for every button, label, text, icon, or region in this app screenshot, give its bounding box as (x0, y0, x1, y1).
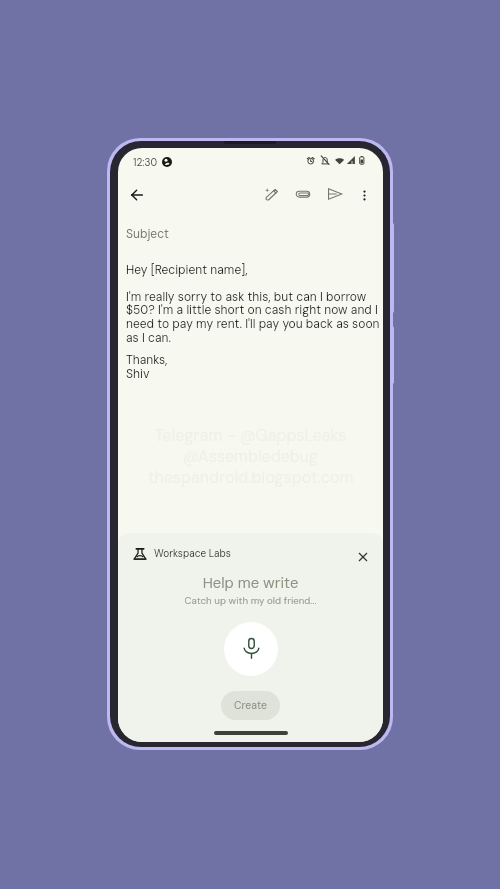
staticText: Create (234, 699, 267, 713)
staticText: Telegram - @GappsLeaks (155, 425, 347, 446)
staticText: Hey [Recipient name], (126, 262, 248, 278)
staticText: @Assembledebug (183, 446, 319, 467)
button[interactable]: Attach file (288, 179, 318, 209)
staticText: Thanks, (126, 352, 168, 368)
button[interactable]: Back (122, 180, 152, 210)
staticText: 12:30 (133, 156, 157, 169)
staticText: Workspace Labs (154, 547, 231, 560)
staticText: I'm really sorry to ask this, but can I … (126, 289, 381, 346)
button[interactable]: Close (352, 546, 374, 568)
button[interactable]: More options (349, 180, 379, 210)
staticText: Shiv (126, 366, 150, 382)
button[interactable]: Smart compose (256, 179, 286, 209)
staticText: Subject (126, 226, 169, 242)
button[interactable]: Voice input (224, 622, 278, 676)
button[interactable]: Send (320, 179, 350, 209)
staticText: thespandroid.blogspot.com (148, 467, 354, 488)
button[interactable]: Create (221, 691, 280, 720)
staticText: Help me write (118, 573, 383, 592)
staticText: Catch up with my old friend... (118, 594, 383, 607)
